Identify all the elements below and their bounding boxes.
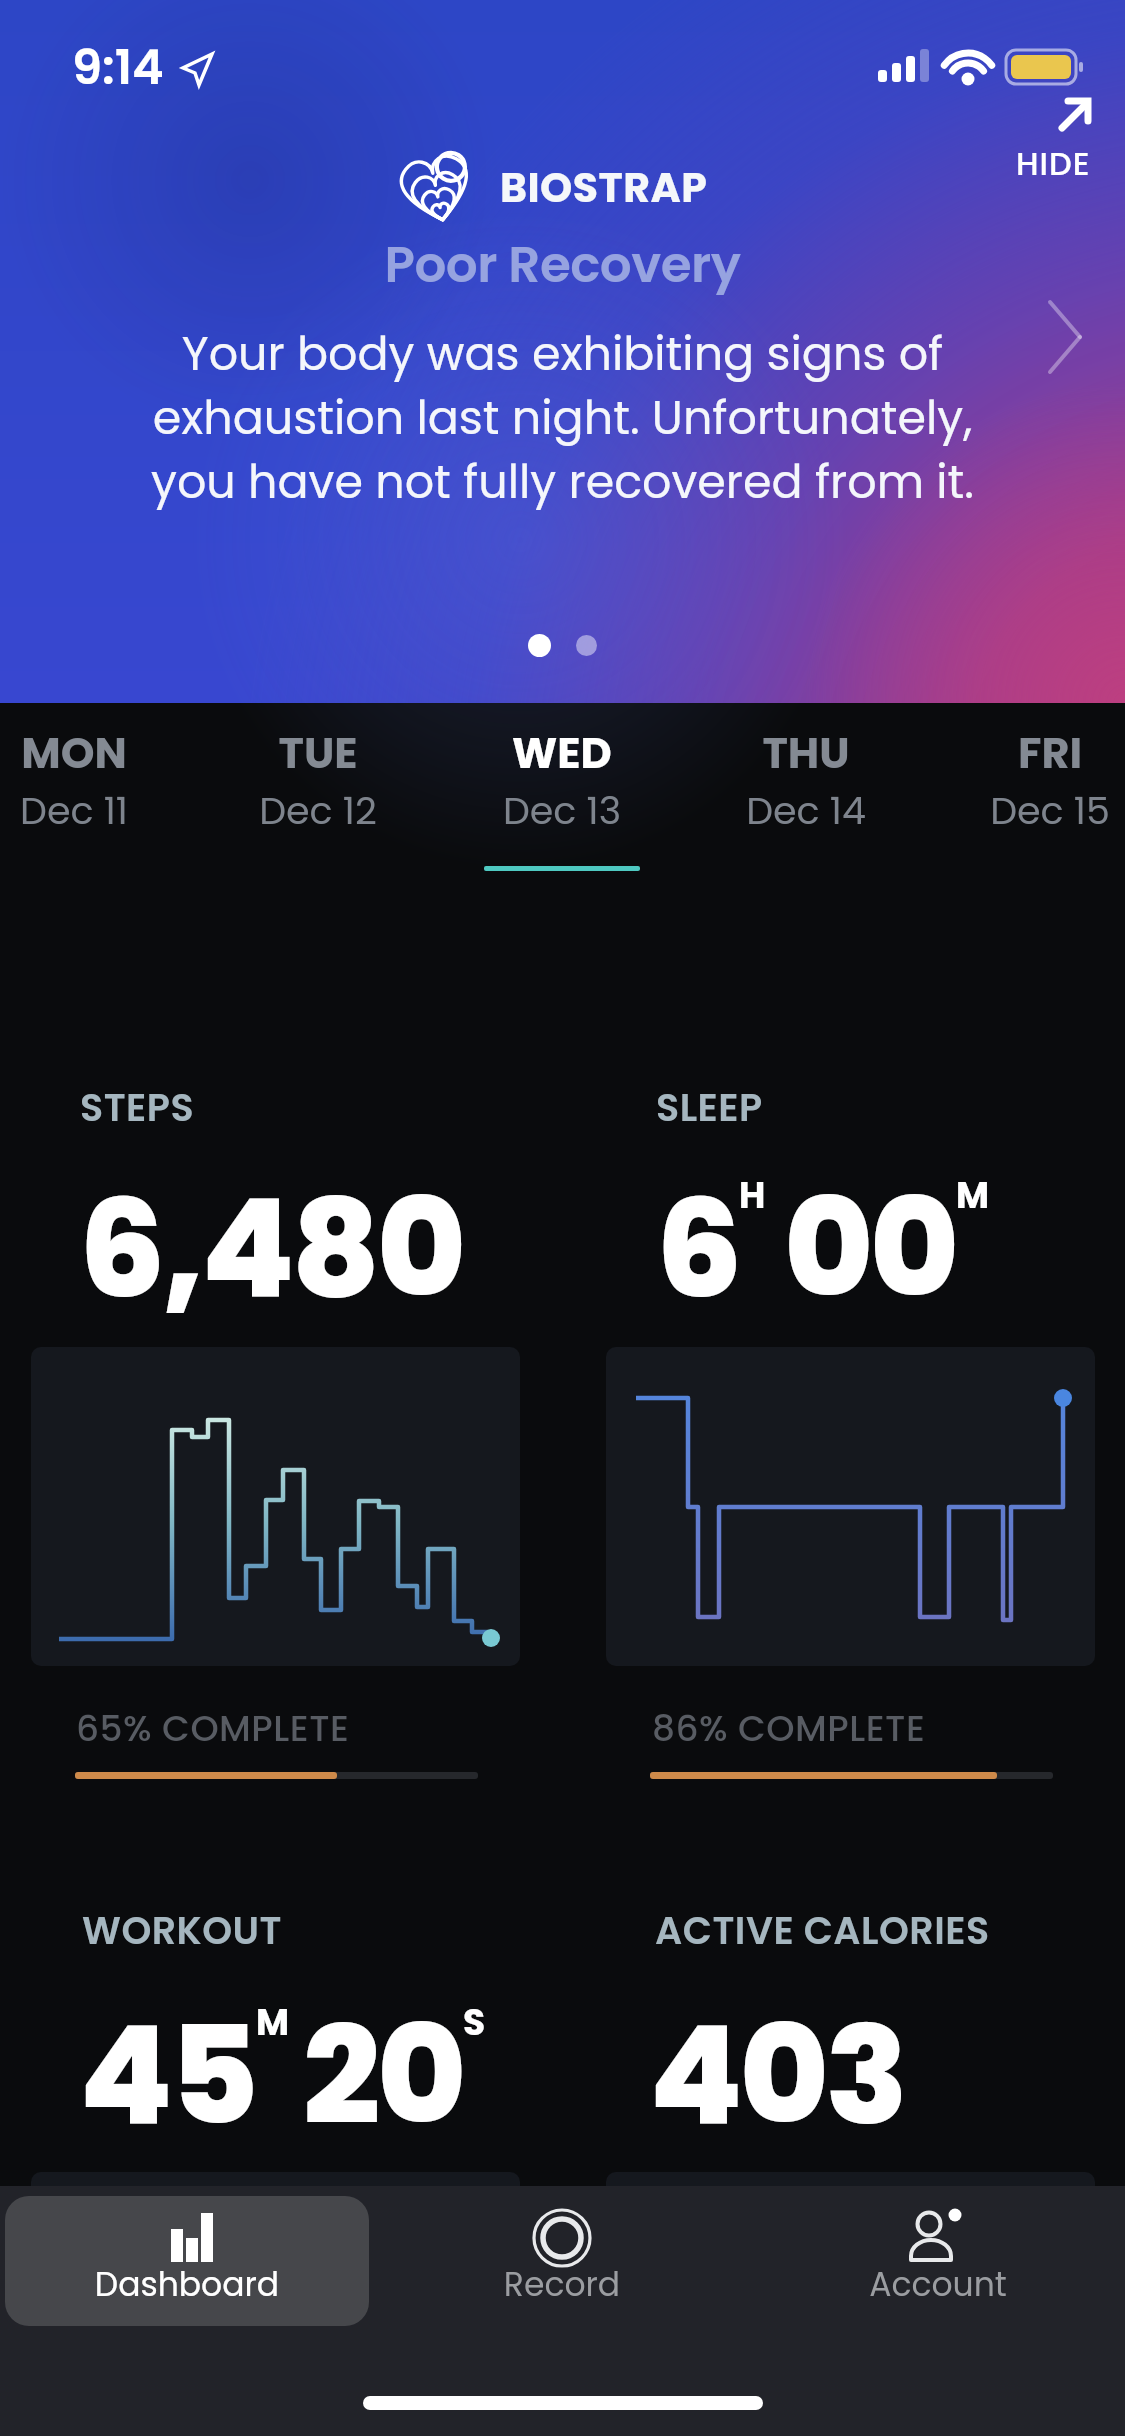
staticText: 6 (656, 1153, 739, 1343)
staticText: 00 (784, 1153, 956, 1343)
staticText: Dashboard (5, 2261, 369, 2307)
staticText: TUE (223, 723, 413, 783)
staticText: M (256, 1997, 290, 2047)
staticText: 9:14 (72, 34, 164, 101)
staticText: ACTIVE CALORIES (655, 1904, 990, 1957)
staticText: THU (711, 723, 901, 783)
staticText: H (739, 1170, 766, 1220)
staticText: 65% COMPLETE (76, 1703, 350, 1753)
staticText: Dec 15 (955, 784, 1125, 837)
button[interactable]: FRI (955, 716, 1125, 886)
staticText: Your body was exhibiting signs of exhaus… (0, 322, 1125, 514)
staticText: HIDE (1016, 141, 1091, 186)
staticText: M (956, 1170, 990, 1220)
staticText: STEPS (80, 1081, 195, 1134)
button[interactable]: WED (467, 716, 657, 886)
button[interactable]: HIDE (990, 94, 1116, 186)
staticText: Poor Recovery (0, 230, 1125, 300)
button[interactable]: Record (440, 2196, 684, 2326)
staticText: BIOSTRAP (500, 159, 708, 216)
staticText: MON (0, 723, 169, 783)
staticText: WED (467, 723, 657, 783)
staticText: FRI (955, 723, 1125, 783)
staticText: S (463, 1997, 486, 2047)
staticText: 6,480 (79, 1153, 463, 1343)
staticText: Dec 11 (0, 784, 169, 837)
button[interactable]: Dashboard (5, 2196, 369, 2326)
staticText: Dec 13 (467, 784, 657, 837)
button[interactable]: MON (0, 716, 169, 886)
staticText: Record (440, 2261, 684, 2307)
staticText: Account (816, 2261, 1060, 2307)
staticText: SLEEP (656, 1081, 763, 1134)
staticText: 45 (79, 1980, 256, 2170)
staticText: Dec 12 (223, 784, 413, 837)
staticText: 86% COMPLETE (652, 1703, 926, 1753)
staticText: 403 (649, 1980, 905, 2170)
staticText: WORKOUT (82, 1904, 283, 1957)
button[interactable]: Account (816, 2196, 1060, 2326)
button[interactable]: THU (711, 716, 901, 886)
staticText: Dec 14 (711, 784, 901, 837)
button[interactable]: TUE (223, 716, 413, 886)
staticText: 20 (303, 1980, 463, 2170)
